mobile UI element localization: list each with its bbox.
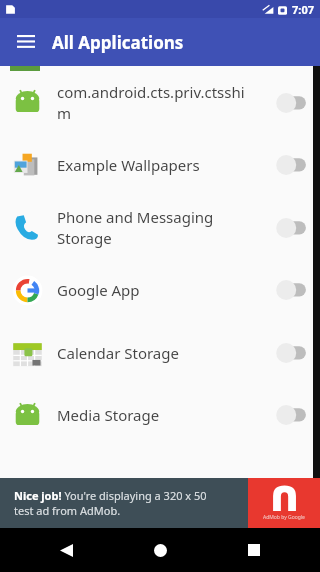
staticText: Example Wallpapers xyxy=(57,155,254,175)
other: AdMob by Google xyxy=(248,478,320,528)
button[interactable]: Back xyxy=(38,528,94,572)
button[interactable]: Open navigation menu xyxy=(0,18,52,66)
button[interactable]: Toggle com.android.cts.priv.ctsshim xyxy=(266,71,320,134)
button[interactable]: Example Wallpapers xyxy=(0,134,320,196)
staticText: 7:07 xyxy=(292,2,314,17)
button[interactable]: Toggle Media Storage xyxy=(266,384,320,446)
button[interactable]: Media Storage xyxy=(0,384,320,446)
staticText: Calendar Storage xyxy=(57,343,254,363)
staticText: All Applications xyxy=(52,31,184,54)
staticText: test ad from AdMob. xyxy=(14,503,121,518)
button[interactable]: Nice job! You're displaying a 320 x 50 xyxy=(0,478,320,528)
button[interactable]: Toggle Phone and Messaging Storage xyxy=(266,196,320,259)
staticText: Phone and Messaging Storage xyxy=(57,207,254,249)
button[interactable]: Toggle Example Wallpapers xyxy=(266,134,320,196)
button[interactable]: Recent apps xyxy=(226,528,282,572)
staticText: Google App xyxy=(57,280,254,300)
staticText: AdMob by Google xyxy=(263,514,305,521)
button[interactable]: Phone and Messaging Storage xyxy=(0,196,320,259)
staticText: Media Storage xyxy=(57,405,254,425)
button[interactable]: Home xyxy=(132,528,188,572)
button[interactable]: Google App xyxy=(0,259,320,321)
button[interactable]: Toggle Calendar Storage xyxy=(266,321,320,384)
button[interactable]: com.android.cts.priv.ctsshim xyxy=(0,71,320,134)
button[interactable]: Calendar Storage xyxy=(0,321,320,384)
staticText: Nice job! You're displaying a 320 x 50 xyxy=(14,488,207,503)
staticText: com.android.cts.priv.ctsshim xyxy=(57,82,254,124)
button[interactable]: Toggle Google App xyxy=(266,259,320,321)
